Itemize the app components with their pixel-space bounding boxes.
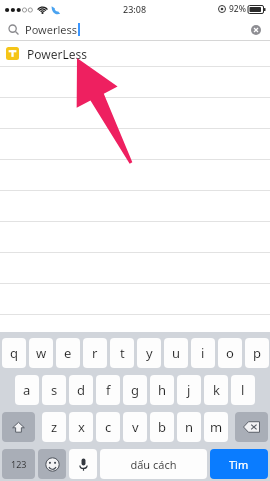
- staticText: dấu cách: [130, 457, 177, 472]
- button[interactable]: [0, 284, 270, 315]
- staticText: f: [106, 381, 111, 399]
- button[interactable]: o: [218, 338, 242, 368]
- button[interactable]: [0, 129, 270, 160]
- staticText: s: [51, 381, 58, 399]
- button[interactable]: [0, 222, 270, 253]
- button[interactable]: [0, 253, 270, 284]
- staticText: k: [213, 381, 220, 399]
- button[interactable]: [0, 191, 270, 222]
- staticText: d: [77, 381, 85, 399]
- button[interactable]: t: [110, 338, 134, 368]
- staticText: 123: [11, 458, 27, 470]
- button[interactable]: b: [150, 412, 174, 442]
- button[interactable]: e: [56, 338, 80, 368]
- button[interactable]: Powerless: [0, 18, 270, 41]
- button[interactable]: d: [69, 375, 93, 405]
- staticText: x: [78, 418, 85, 436]
- staticText: b: [158, 418, 166, 436]
- button[interactable]: Dictate: [69, 449, 97, 479]
- staticText: a: [23, 381, 31, 399]
- button[interactable]: PowerLess: [0, 41, 270, 66]
- staticText: y: [146, 344, 153, 362]
- button[interactable]: u: [164, 338, 188, 368]
- staticText: Tìm: [229, 457, 249, 472]
- button[interactable]: w: [29, 338, 53, 368]
- button[interactable]: i: [191, 338, 215, 368]
- staticText: h: [158, 381, 167, 399]
- staticText: 92%: [229, 3, 246, 15]
- staticText: p: [253, 344, 261, 362]
- button[interactable]: z: [42, 412, 66, 442]
- staticText: Powerless: [25, 22, 78, 37]
- button[interactable]: a: [15, 375, 39, 405]
- button[interactable]: 123: [2, 449, 35, 479]
- staticText: r: [92, 344, 98, 362]
- staticText: t: [120, 344, 125, 362]
- staticText: j: [187, 381, 191, 399]
- staticText: i: [201, 344, 205, 362]
- staticText: z: [51, 418, 58, 436]
- button[interactable]: m: [204, 412, 228, 442]
- button[interactable]: r: [83, 338, 107, 368]
- staticText: w: [36, 344, 47, 362]
- button[interactable]: x: [69, 412, 93, 442]
- staticText: q: [10, 344, 18, 362]
- button[interactable]: Backspace: [235, 412, 268, 442]
- staticText: v: [132, 418, 139, 436]
- button[interactable]: g: [123, 375, 147, 405]
- button[interactable]: y: [137, 338, 161, 368]
- staticText: c: [105, 418, 112, 436]
- button[interactable]: [0, 67, 270, 98]
- button[interactable]: l: [231, 375, 255, 405]
- button[interactable]: [0, 160, 270, 191]
- button[interactable]: p: [245, 338, 269, 368]
- staticText: PowerLess: [27, 46, 87, 62]
- button[interactable]: Tìm: [210, 449, 268, 479]
- button[interactable]: f: [96, 375, 120, 405]
- button[interactable]: c: [96, 412, 120, 442]
- button[interactable]: Shift: [2, 412, 35, 442]
- staticText: m: [210, 418, 223, 436]
- button[interactable]: q: [2, 338, 26, 368]
- button[interactable]: k: [204, 375, 228, 405]
- staticText: e: [64, 344, 72, 362]
- button[interactable]: h: [150, 375, 174, 405]
- staticText: 23:08: [123, 3, 147, 15]
- button[interactable]: dấu cách: [100, 449, 207, 479]
- button[interactable]: Emoji: [38, 449, 66, 479]
- button[interactable]: v: [123, 412, 147, 442]
- staticText: l: [241, 381, 245, 399]
- staticText: u: [172, 344, 181, 362]
- button[interactable]: j: [177, 375, 201, 405]
- staticText: o: [226, 344, 234, 362]
- button[interactable]: [0, 98, 270, 129]
- staticText: g: [131, 381, 139, 399]
- button[interactable]: n: [177, 412, 201, 442]
- staticText: n: [185, 418, 194, 436]
- button[interactable]: Clear text: [249, 23, 263, 37]
- button[interactable]: s: [42, 375, 66, 405]
